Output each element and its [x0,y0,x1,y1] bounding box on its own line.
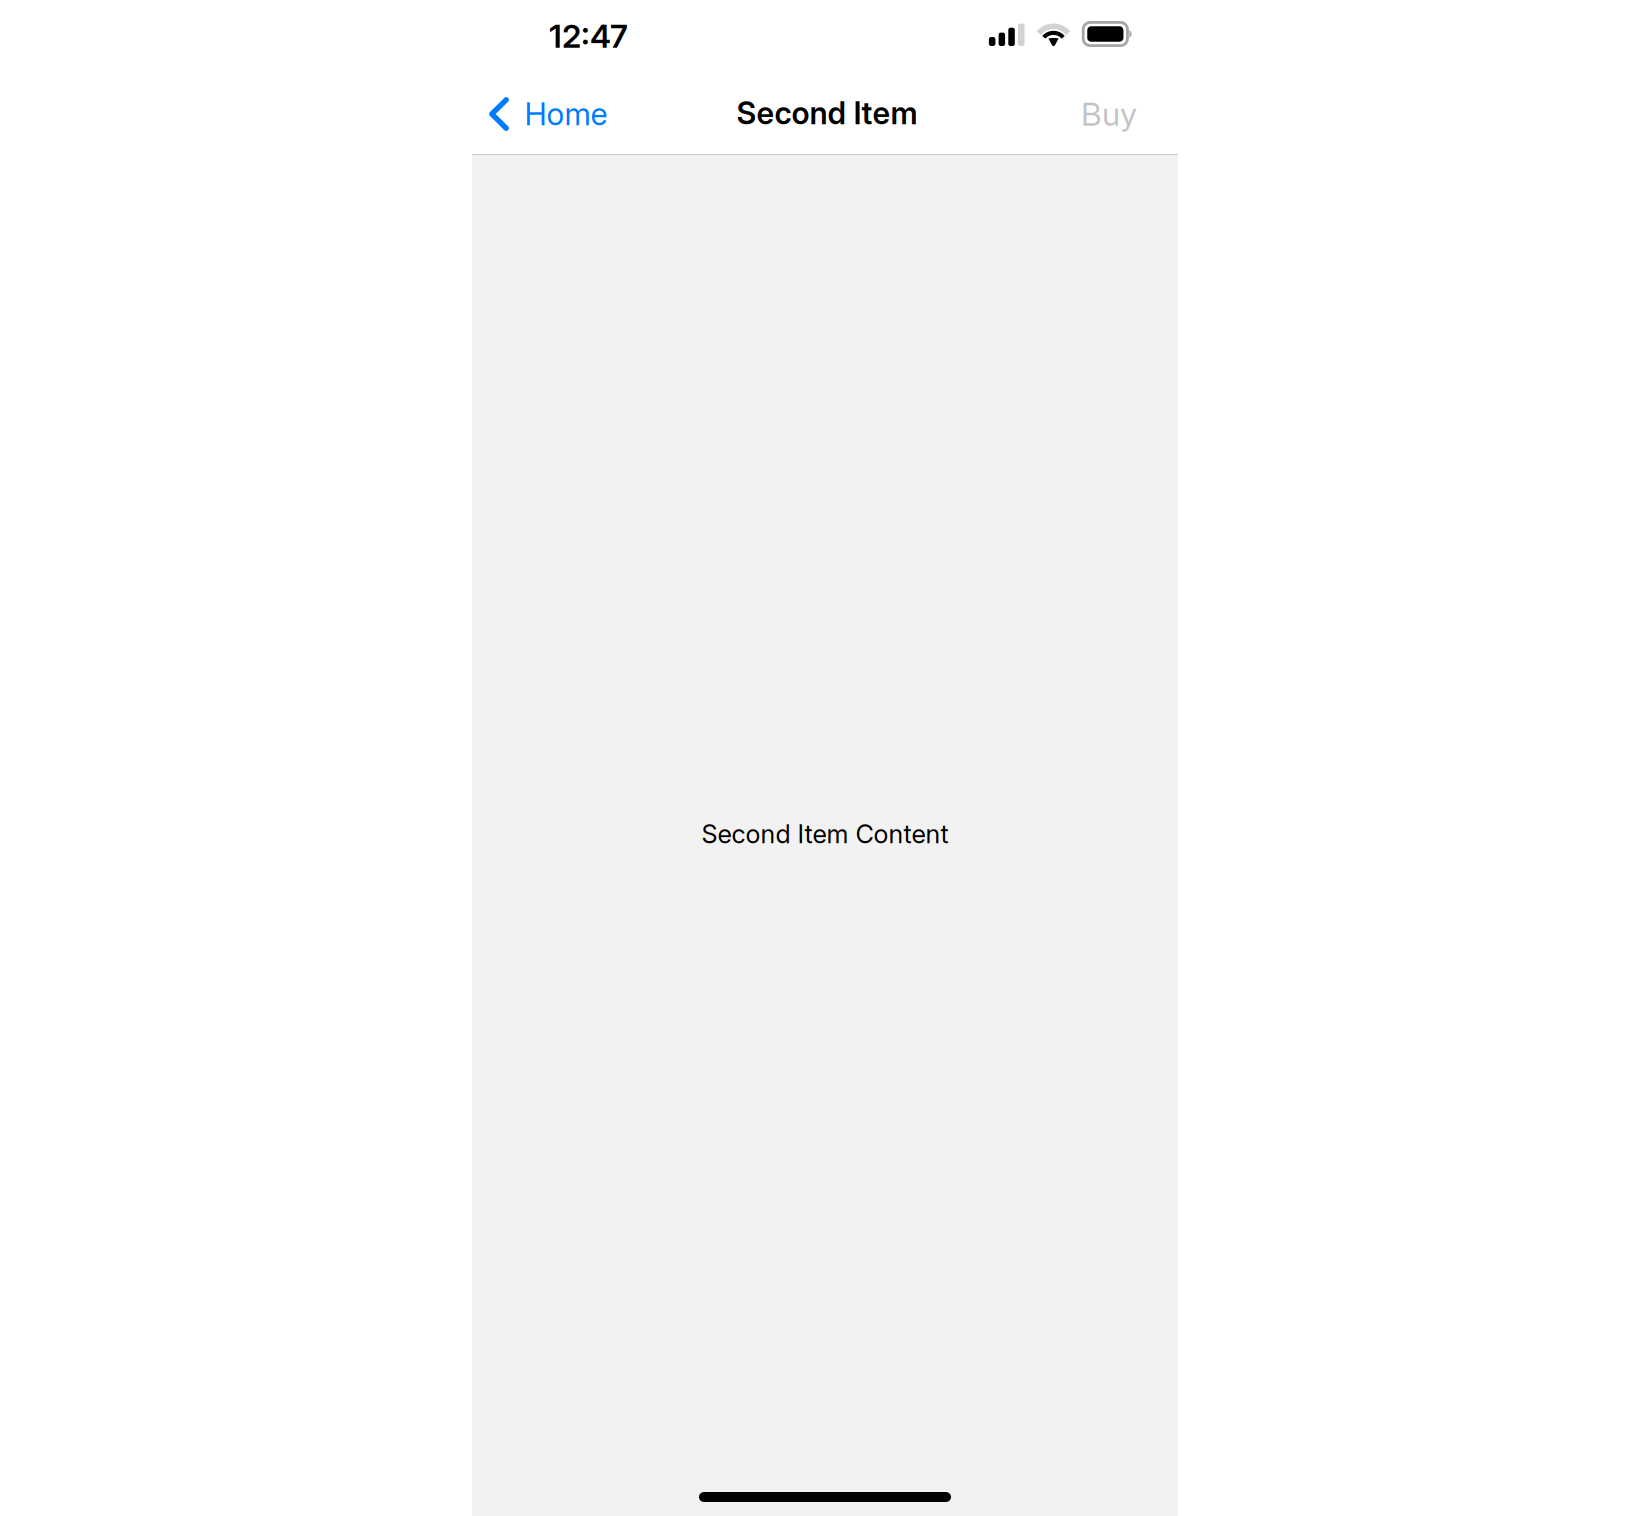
staticText: Home [524,96,607,132]
button[interactable]: Home [472,78,619,144]
staticText: Second Item [736,95,917,131]
button[interactable]: Buy [1065,77,1178,145]
staticText: Second Item Content [701,819,948,849]
staticText: 12:47 [549,17,628,55]
staticText: Buy [1081,95,1137,133]
